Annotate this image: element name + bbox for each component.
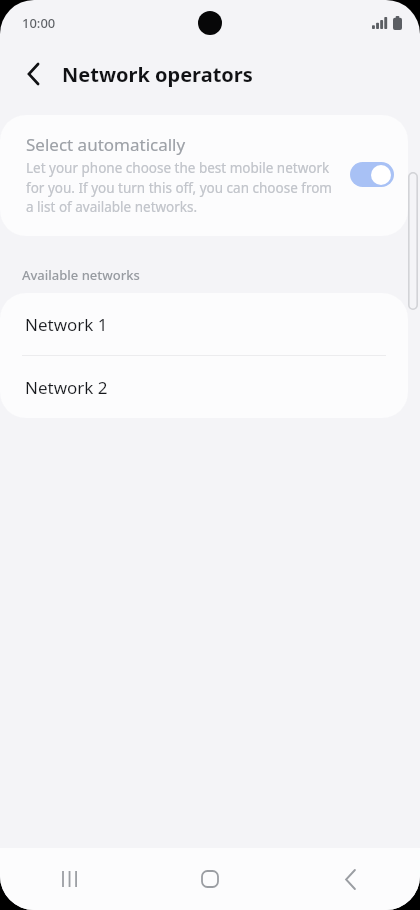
button[interactable]: Select automatically toggle xyxy=(350,162,394,187)
staticText: Let your phone choose the best mobile ne… xyxy=(26,159,340,216)
button[interactable]: Back xyxy=(16,57,50,91)
button[interactable]: Select automatically xyxy=(0,115,408,236)
button[interactable]: Network 1 xyxy=(0,293,408,355)
staticText: 10:00 xyxy=(22,14,56,32)
staticText: Network 2 xyxy=(25,376,108,399)
staticText: Network 1 xyxy=(25,313,108,336)
button[interactable]: Recent apps xyxy=(0,848,140,910)
staticText: Network operators xyxy=(62,61,253,88)
staticText: Available networks xyxy=(22,266,140,284)
button[interactable]: Back xyxy=(280,848,420,910)
button[interactable]: Home xyxy=(140,848,280,910)
button[interactable]: Network 2 xyxy=(0,356,408,418)
staticText: Select automatically xyxy=(26,133,186,156)
